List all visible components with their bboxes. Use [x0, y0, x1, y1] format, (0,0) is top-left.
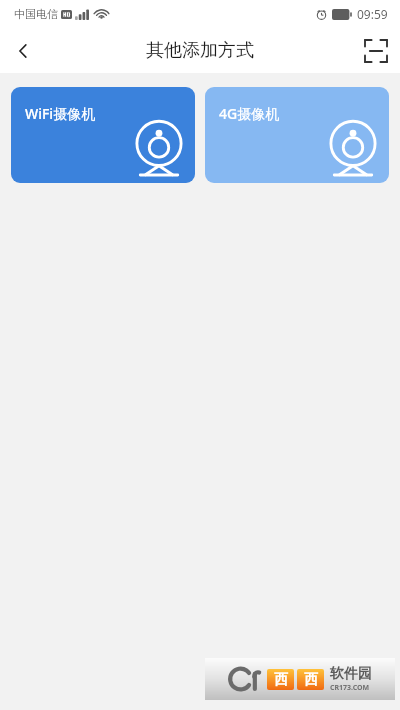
staticText: 4G摄像机 [219, 104, 280, 123]
staticText: 西 [274, 671, 288, 689]
staticText: 其他添加方式 [146, 39, 254, 62]
staticText: 软件园 [330, 665, 372, 683]
staticText: 中国电信 [14, 7, 58, 21]
button[interactable]: 4G摄像机 [205, 87, 389, 183]
button[interactable]: Back [0, 28, 46, 73]
button[interactable]: Scan QR code [352, 28, 400, 73]
staticText: WiFi摄像机 [25, 104, 96, 123]
button[interactable]: WiFi摄像机 [11, 87, 195, 183]
staticText: CR173.COM [330, 683, 370, 693]
staticText: 09:59 [357, 6, 388, 22]
staticText: 西 [304, 671, 318, 689]
